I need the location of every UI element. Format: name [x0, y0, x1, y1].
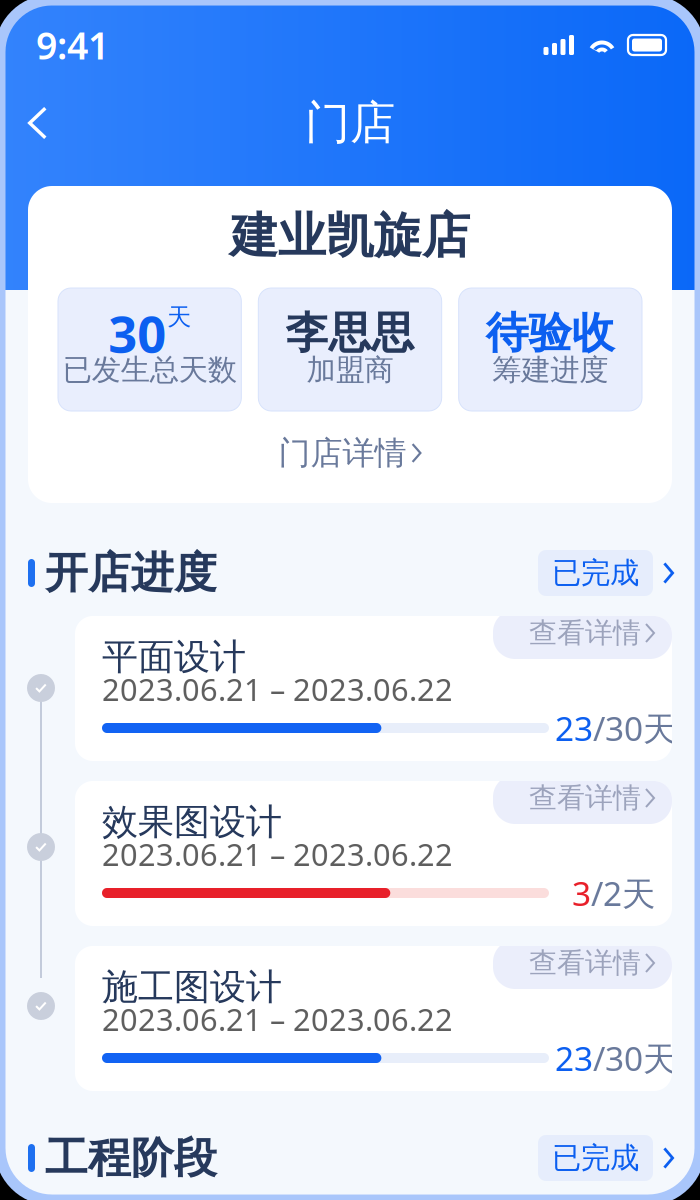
staticText: 加盟商 [306, 352, 393, 388]
staticText: 门店 [305, 95, 395, 151]
staticText: /2天 [591, 871, 655, 915]
staticText: 2023.06.21 – 2023.06.22 [102, 999, 453, 1039]
staticText: /30天 [593, 706, 676, 750]
staticText: 待验收 [486, 307, 615, 359]
staticText: 已发生总天数 [63, 352, 237, 388]
staticText: 已完成 [552, 1140, 639, 1176]
staticText: 9:41 [36, 20, 109, 70]
button[interactable]: 查看详情 [493, 940, 672, 989]
staticText: 查看详情 [529, 616, 641, 650]
staticText: 查看详情 [529, 781, 641, 815]
staticText: 23 [555, 1036, 593, 1080]
button[interactable]: 已完成 [538, 550, 674, 596]
staticText: 23 [555, 706, 593, 750]
staticText: 天 [167, 302, 191, 332]
button[interactable]: 已完成 [538, 1135, 674, 1181]
button[interactable]: 查看详情 [493, 775, 672, 824]
staticText: 2023.06.21 – 2023.06.22 [102, 834, 453, 874]
staticText: 查看详情 [529, 946, 641, 980]
staticText: 3 [572, 871, 591, 915]
staticText: 效果图设计 [102, 800, 282, 844]
staticText: 筹建进度 [492, 352, 608, 388]
staticText: 已完成 [552, 555, 639, 591]
button[interactable]: 查看详情 [493, 610, 672, 659]
staticText: 平面设计 [102, 635, 246, 679]
staticText: 施工图设计 [102, 965, 282, 1009]
staticText: 30 [108, 299, 166, 367]
staticText: 建业凯旋店 [230, 206, 470, 265]
staticText: /30天 [593, 1036, 676, 1080]
button[interactable]: 门店详情 [258, 411, 441, 503]
staticText: 门店详情 [278, 433, 406, 473]
staticText: 2023.06.21 – 2023.06.22 [102, 669, 453, 709]
staticText: 工程阶段 [45, 1132, 217, 1184]
staticText: 开店进度 [45, 547, 217, 599]
button[interactable]: Back [0, 96, 47, 149]
staticText: 李思思 [285, 307, 414, 359]
